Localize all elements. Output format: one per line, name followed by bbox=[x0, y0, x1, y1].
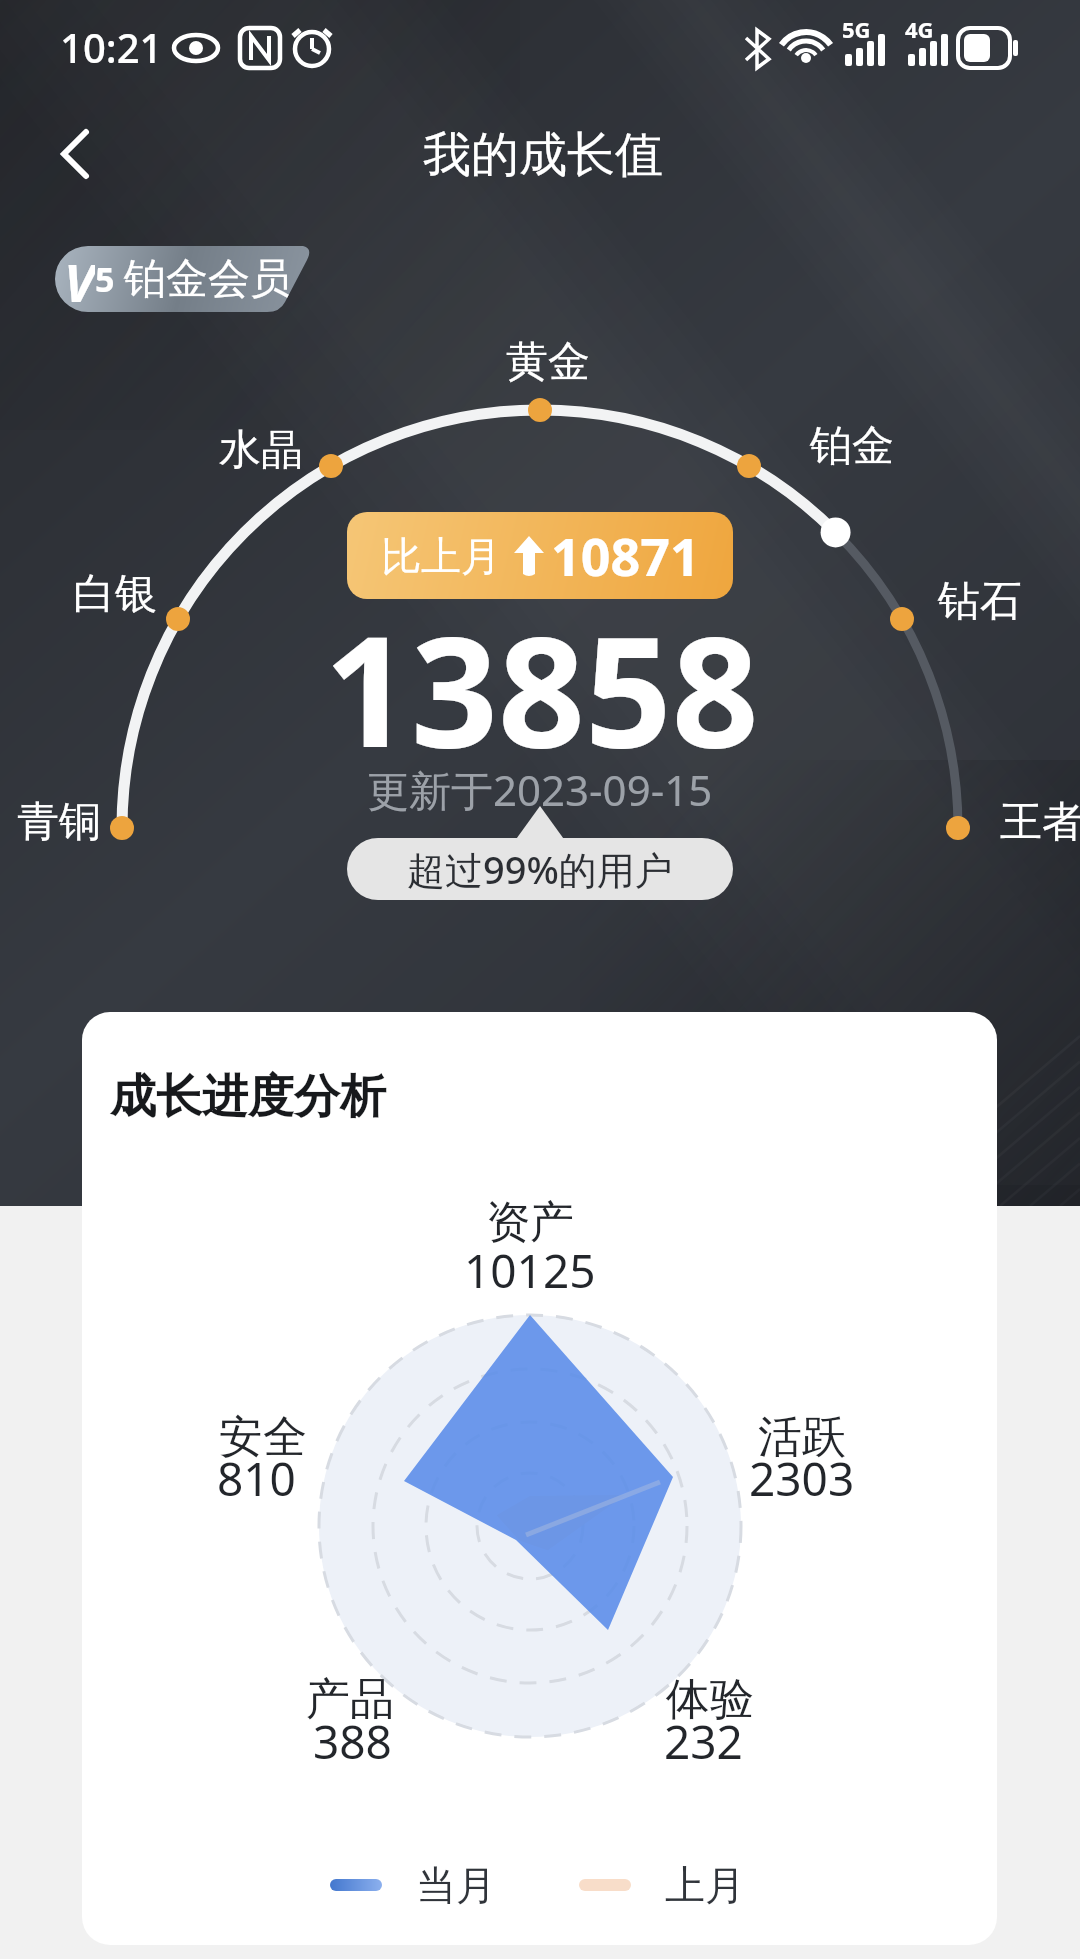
staticText: 10871 bbox=[551, 520, 700, 591]
staticText: 王者 bbox=[1000, 796, 1080, 849]
staticText: 活跃 bbox=[758, 1410, 846, 1465]
staticText: 5 bbox=[95, 256, 124, 302]
button[interactable]: 上月 bbox=[579, 1860, 745, 1910]
staticText: 钻石 bbox=[938, 575, 1022, 628]
staticText: 4G bbox=[905, 14, 934, 44]
staticText: 2303 bbox=[749, 1447, 855, 1510]
staticText: 5G bbox=[842, 14, 871, 44]
button[interactable] bbox=[44, 122, 108, 186]
staticText: 13858 bbox=[324, 585, 759, 792]
staticText: 上月 bbox=[665, 1860, 745, 1910]
staticText: 更新于2023-09-15 bbox=[367, 761, 713, 818]
staticText: 10125 bbox=[464, 1239, 596, 1302]
staticText: 水晶 bbox=[219, 424, 303, 477]
staticText: 铂金会员 bbox=[124, 253, 292, 306]
staticText: 10:21 bbox=[60, 20, 163, 74]
staticText: 成长进度分析 bbox=[110, 1068, 386, 1126]
button[interactable] bbox=[82, 1012, 997, 1945]
staticText: 我的成长值 bbox=[423, 125, 663, 185]
staticText: 体验 bbox=[666, 1672, 754, 1727]
staticText: 比上月 bbox=[381, 531, 501, 581]
staticText: 232 bbox=[664, 1710, 743, 1773]
staticText: 青铜 bbox=[17, 796, 101, 849]
staticText: 铂金 bbox=[810, 420, 894, 473]
staticText: 资产 bbox=[486, 1195, 574, 1250]
staticText: V bbox=[64, 246, 95, 312]
button[interactable]: 超过99%的用户 bbox=[347, 838, 733, 900]
staticText: 安全 bbox=[219, 1410, 307, 1465]
button[interactable]: 当月 bbox=[330, 1860, 496, 1910]
button[interactable]: V bbox=[55, 246, 311, 312]
staticText: 当月 bbox=[416, 1860, 496, 1910]
staticText: 810 bbox=[217, 1447, 296, 1510]
staticText: 388 bbox=[313, 1710, 392, 1773]
staticText: 超过99%的用户 bbox=[407, 843, 673, 895]
button[interactable]: 比上月 bbox=[347, 512, 733, 599]
staticText: 黄金 bbox=[506, 336, 590, 389]
staticText: 白银 bbox=[73, 568, 157, 621]
staticText: 产品 bbox=[306, 1672, 394, 1727]
